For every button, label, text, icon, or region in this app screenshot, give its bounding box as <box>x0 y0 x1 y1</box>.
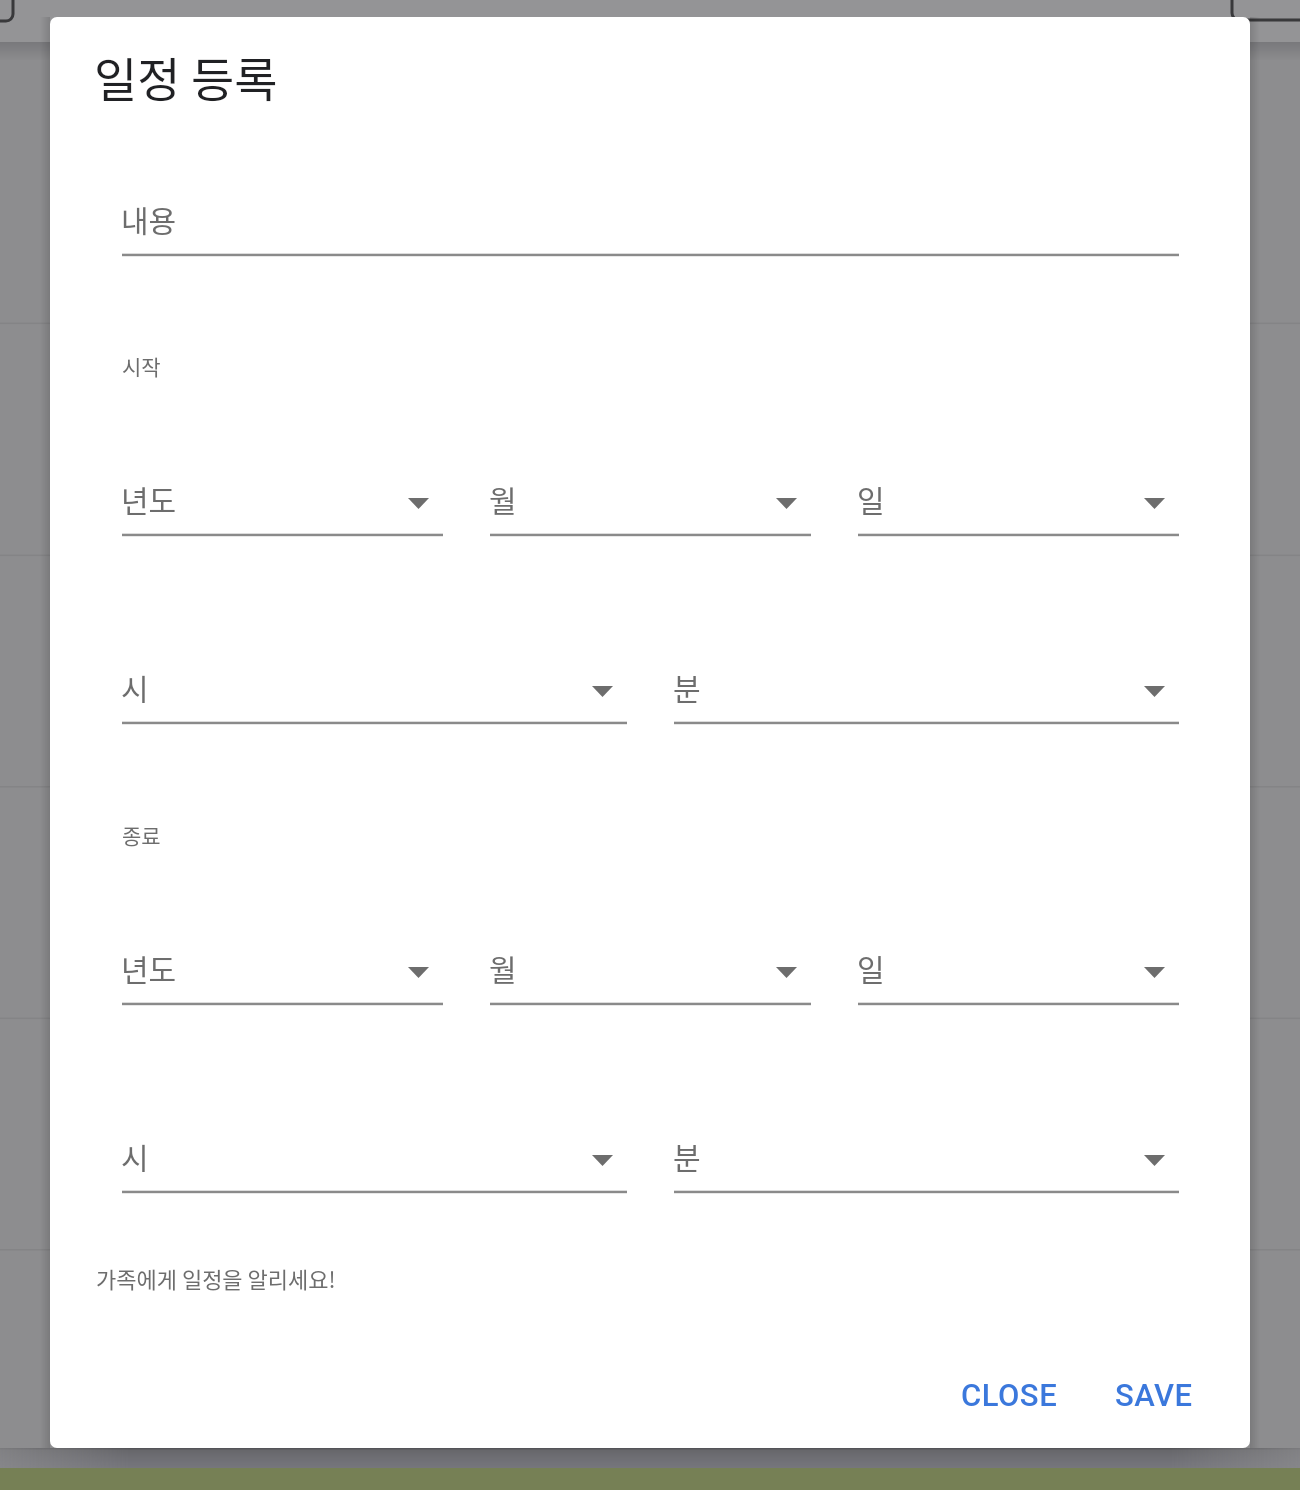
button[interactable]: 시 <box>122 1129 627 1195</box>
staticText: 가족에게 일정을 알리세요! <box>96 1262 336 1294</box>
button[interactable]: 월 <box>490 941 811 1007</box>
button[interactable]: 분 <box>674 1129 1179 1195</box>
button[interactable]: 년도 <box>122 941 443 1007</box>
staticText: 시 <box>121 665 149 708</box>
staticText: 종료 <box>122 820 161 850</box>
staticText: 분 <box>673 665 701 708</box>
button[interactable]: SAVE <box>1089 1355 1216 1421</box>
button[interactable]: 분 <box>674 660 1179 726</box>
button[interactable]: CLOSE <box>935 1355 1079 1421</box>
button[interactable]: 월 <box>490 472 811 538</box>
staticText: 일정 등록 <box>94 42 278 110</box>
button[interactable]: 년도 <box>122 472 443 538</box>
staticText: SAVE <box>1115 1377 1193 1413</box>
staticText: 분 <box>673 1134 701 1177</box>
staticText: 시 <box>121 1134 149 1177</box>
staticText: 내용 <box>121 197 177 240</box>
button[interactable]: 내용 <box>122 192 1179 258</box>
staticText: 일 <box>857 946 885 989</box>
staticText: 년도 <box>121 946 177 989</box>
button[interactable]: 일 <box>858 472 1179 538</box>
button[interactable]: 시 <box>122 660 627 726</box>
staticText: CLOSE <box>961 1377 1058 1413</box>
staticText: 시작 <box>122 351 161 381</box>
button[interactable]: 일 <box>858 941 1179 1007</box>
staticText: 월 <box>489 477 517 520</box>
staticText: 년도 <box>121 477 177 520</box>
staticText: 월 <box>489 946 517 989</box>
staticText: 일 <box>857 477 885 520</box>
